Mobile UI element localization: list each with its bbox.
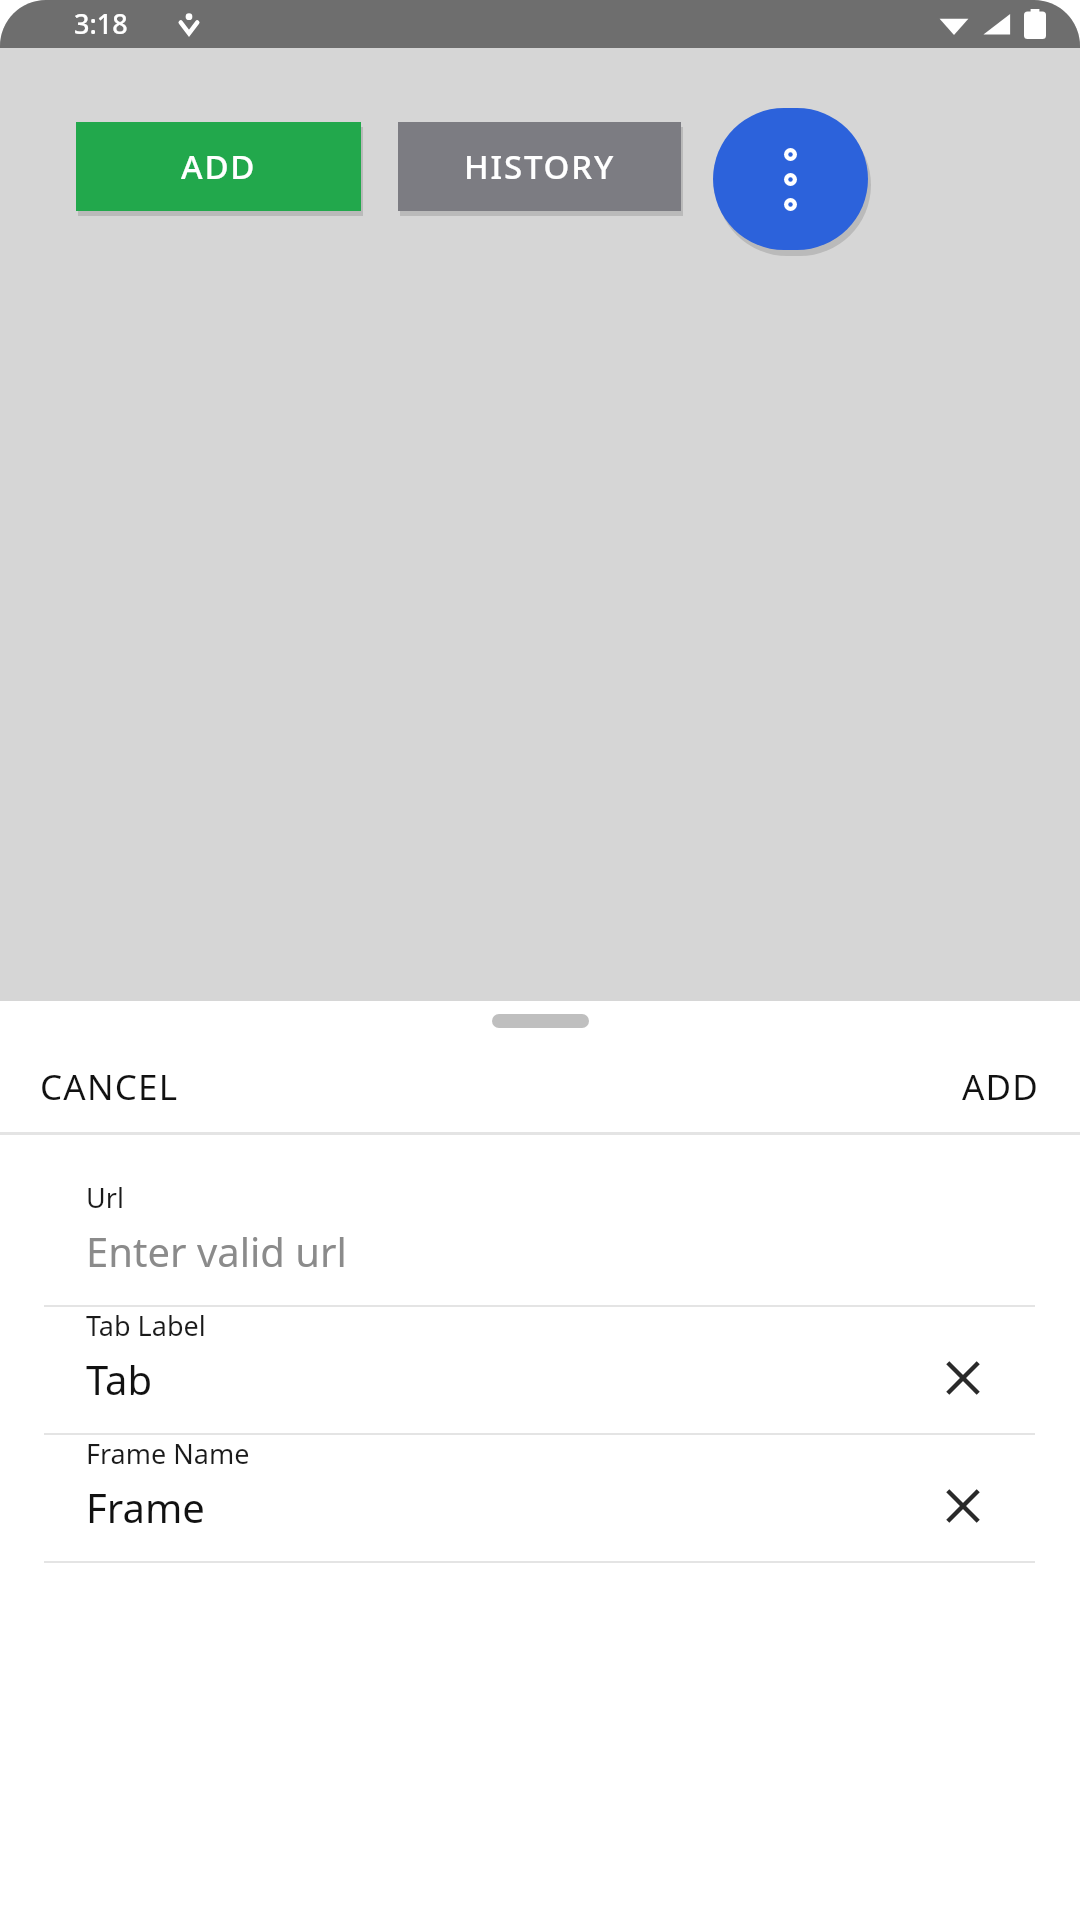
staticText: Tab Label xyxy=(86,1307,206,1344)
staticText: Frame xyxy=(86,1480,205,1534)
button[interactable]: Clear Tab Label xyxy=(932,1347,994,1409)
staticText: ADD xyxy=(181,144,257,189)
button[interactable]: More options xyxy=(713,108,868,250)
staticText: 3:18 xyxy=(74,5,128,42)
button[interactable]: ADD xyxy=(76,122,361,211)
staticText: Enter valid url xyxy=(86,1224,347,1278)
button[interactable]: CANCEL xyxy=(0,1047,219,1127)
staticText: Frame Name xyxy=(86,1435,250,1472)
staticText: CANCEL xyxy=(40,1063,179,1111)
button[interactable]: HISTORY xyxy=(398,122,681,211)
staticText: Tab xyxy=(86,1352,153,1406)
staticText: HISTORY xyxy=(464,144,616,189)
button[interactable]: Frame Name xyxy=(0,1435,1080,1561)
staticText: Url xyxy=(86,1179,124,1216)
button[interactable]: ADD xyxy=(922,1047,1080,1127)
staticText: ADD xyxy=(962,1063,1040,1111)
button[interactable]: Url xyxy=(0,1179,1080,1305)
button[interactable]: Tab Label xyxy=(0,1307,1080,1433)
button[interactable]: Clear Frame Name xyxy=(932,1475,994,1537)
